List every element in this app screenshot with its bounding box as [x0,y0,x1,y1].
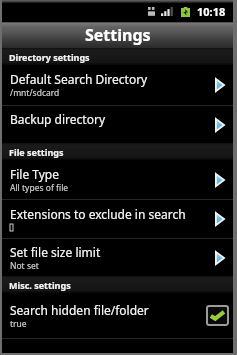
staticText: File settings [9,146,64,158]
button[interactable]: Default Search Directory [2,65,233,105]
staticText: File Type [10,166,60,182]
staticText: Settings [85,24,151,46]
staticText: true [10,318,27,330]
button[interactable]: Search hidden file/folder [2,293,233,338]
button[interactable]: File Type [2,160,233,199]
other: Open [215,118,225,132]
staticText: Backup directory [10,111,106,127]
staticText: Misc. settings [9,279,71,291]
staticText: Set file size limit [10,244,101,260]
other: Open [215,212,225,226]
button[interactable]: Set file size limit [2,239,233,276]
staticText: Not set [10,260,39,272]
other: Open [215,251,225,265]
button[interactable]: Backup directory [2,106,233,143]
staticText: 10:18 [197,4,226,19]
staticText: /mnt/sdcard [10,87,60,99]
staticText: Extensions to exclude in search [10,206,186,222]
other: Open [215,78,225,92]
staticText: Search hidden file/folder [10,302,149,318]
staticText: All types of file [10,182,69,194]
staticText: Directory settings [9,51,90,63]
staticText: Default Search Directory [10,71,148,87]
other: Toggle search hidden file/folder [206,305,229,326]
button[interactable]: Extensions to exclude in search [2,200,233,238]
other: Open [215,173,225,187]
